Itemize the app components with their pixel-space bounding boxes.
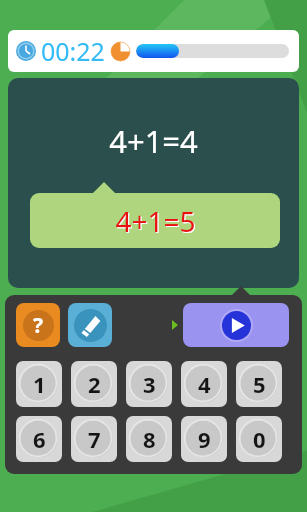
button[interactable]: 5: [236, 361, 282, 407]
button[interactable]: Hint: [16, 303, 60, 347]
staticText: 8: [143, 424, 156, 454]
staticText: 4: [198, 369, 211, 399]
staticText: 2: [88, 369, 101, 399]
button[interactable]: 0: [236, 416, 282, 462]
staticText: 7: [88, 424, 101, 454]
staticText: 4+1=4: [109, 120, 198, 162]
button[interactable]: 3: [126, 361, 172, 407]
button[interactable]: 2: [71, 361, 117, 407]
staticText: 0: [253, 424, 266, 454]
staticText: 1: [33, 369, 46, 399]
button[interactable]: Play: [183, 303, 289, 347]
staticText: 00:22: [41, 34, 105, 68]
button[interactable]: 6: [16, 416, 62, 462]
staticText: 6: [33, 424, 46, 454]
staticText: 9: [198, 424, 211, 454]
button[interactable]: Erase: [68, 303, 112, 347]
button[interactable]: 4: [181, 361, 227, 407]
button[interactable]: 4+1=5: [30, 193, 280, 248]
button[interactable]: 9: [181, 416, 227, 462]
staticText: 5: [253, 369, 266, 399]
staticText: ?: [33, 311, 44, 340]
button[interactable]: 8: [126, 416, 172, 462]
button[interactable]: 7: [71, 416, 117, 462]
staticText: 4+1=5: [115, 202, 196, 240]
staticText: 3: [143, 369, 156, 399]
button[interactable]: 1: [16, 361, 62, 407]
staticText: 4+1=5: [116, 203, 197, 241]
